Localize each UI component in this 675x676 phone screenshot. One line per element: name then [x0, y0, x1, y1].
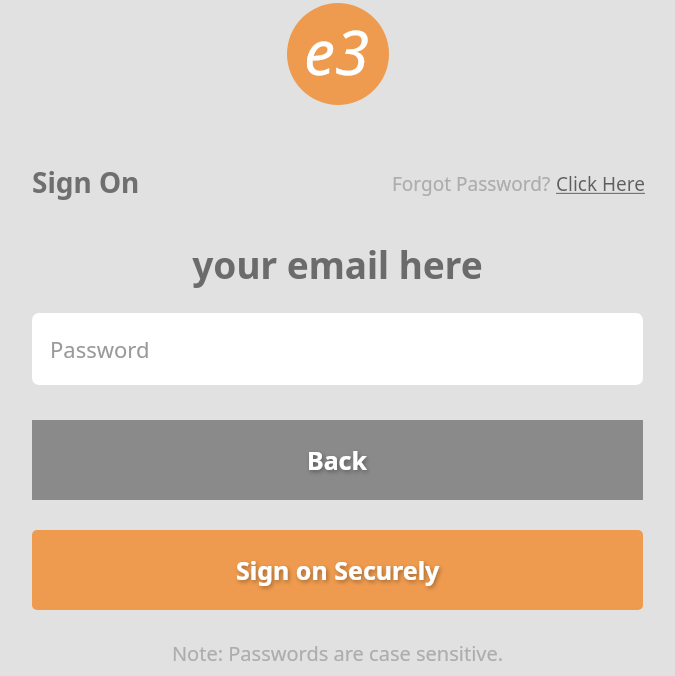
staticText: Click Here	[556, 171, 645, 197]
staticText: your email here	[0, 239, 675, 289]
staticText: Sign On	[32, 163, 140, 201]
button[interactable]: Password	[32, 313, 643, 385]
staticText: e3	[304, 9, 370, 93]
staticText: Sign on Securely	[236, 553, 440, 587]
staticText: Password	[50, 334, 150, 364]
button[interactable]: Forgot Password?	[392, 171, 645, 197]
other: e3 logo	[287, 3, 389, 105]
button[interactable]: Sign on Securely	[32, 530, 643, 610]
button[interactable]: Back	[32, 420, 643, 500]
staticText: Note: Passwords are case sensitive.	[0, 640, 675, 667]
staticText: Back	[307, 443, 368, 477]
staticText: Forgot Password?	[392, 171, 556, 197]
